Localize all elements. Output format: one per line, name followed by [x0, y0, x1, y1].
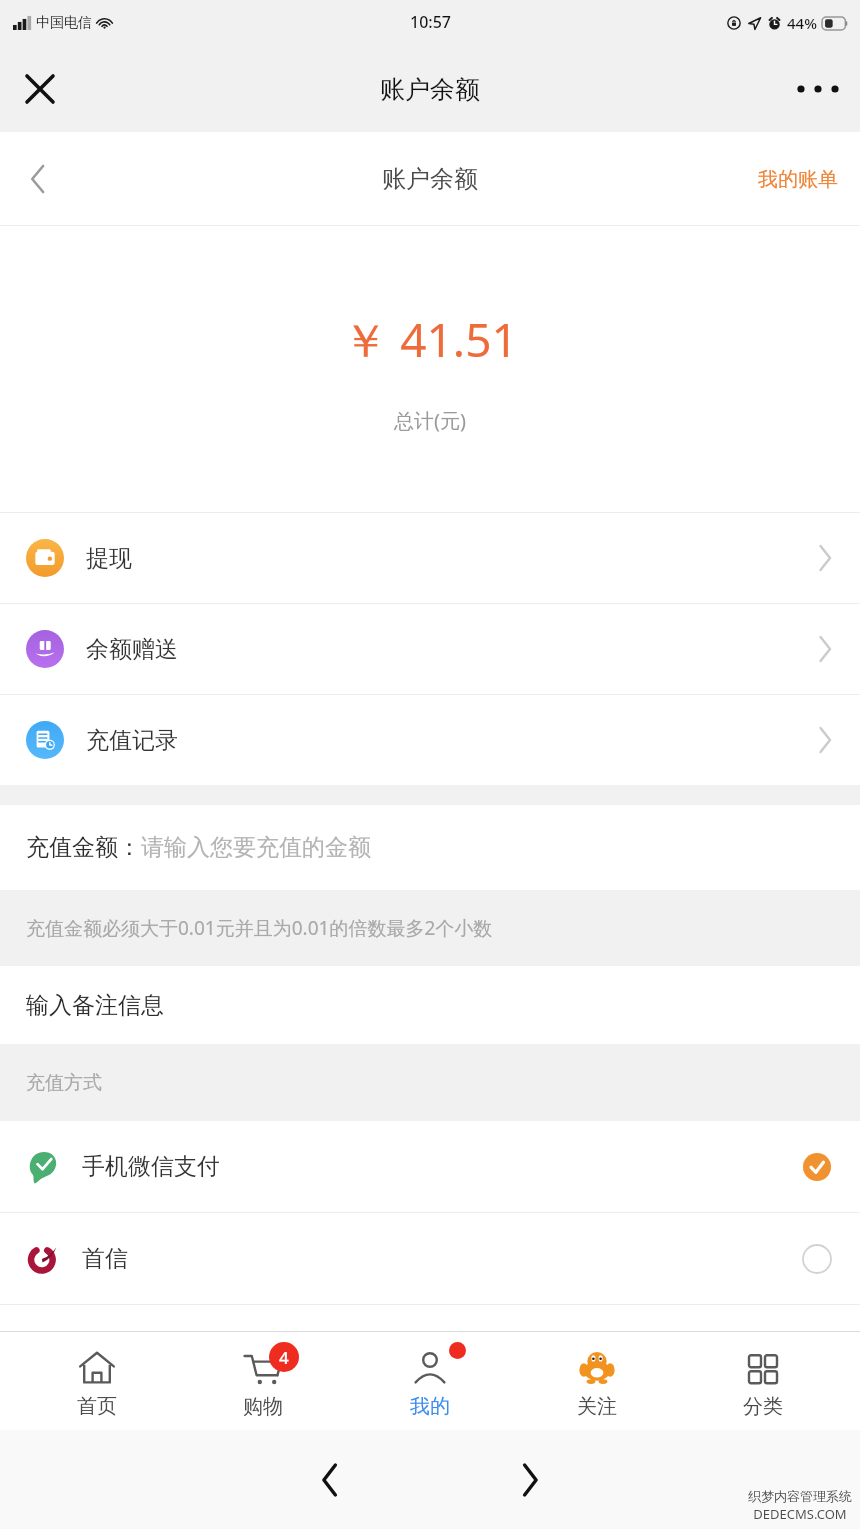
staticText: 账户余额 — [380, 74, 480, 105]
button[interactable]: 我的 — [360, 1344, 500, 1419]
button[interactable]: 我的账单 — [754, 159, 842, 200]
staticText: 总计(元) — [394, 407, 466, 434]
staticText: 织梦内容管理系统 DEDECMS.COM — [748, 1488, 852, 1523]
button[interactable]: 首信 — [0, 1213, 860, 1304]
staticText: 关注 — [577, 1394, 617, 1419]
button[interactable]: 分类 — [693, 1344, 833, 1419]
button[interactable]: Next — [495, 1445, 565, 1515]
button[interactable]: 首页 — [27, 1344, 167, 1419]
staticText: 购物 — [243, 1394, 283, 1419]
staticText: 分类 — [743, 1394, 783, 1419]
button[interactable]: 输入备注信息 — [0, 966, 860, 1044]
staticText: 余额赠送 — [86, 635, 178, 664]
button[interactable]: Previous — [295, 1445, 365, 1515]
button[interactable]: 提现 — [0, 513, 860, 603]
button[interactable]: 关注 — [527, 1344, 667, 1419]
button[interactable]: Back — [10, 151, 66, 207]
staticText: ￥ 41.51 — [342, 308, 518, 371]
staticText: 输入备注信息 — [26, 991, 164, 1020]
staticText: 充值方式 — [26, 1071, 102, 1095]
staticText: 充值记录 — [86, 726, 178, 755]
staticText: 首信 — [82, 1244, 128, 1273]
staticText: 10:57 — [410, 11, 451, 33]
staticText: 我的账单 — [758, 167, 838, 192]
button[interactable]: 4 — [193, 1344, 333, 1419]
button[interactable]: 余额赠送 — [0, 604, 860, 694]
staticText: 44% — [787, 13, 817, 33]
staticText: 手机微信支付 — [82, 1152, 220, 1181]
button[interactable]: 手机微信支付 — [0, 1121, 860, 1212]
staticText: 充值金额必须大于0.01元并且为0.01的倍数最多2个小数 — [26, 915, 493, 941]
staticText: 提现 — [86, 544, 132, 573]
staticText: 账户余额 — [382, 164, 478, 194]
button[interactable]: More options — [790, 67, 846, 111]
staticText: 充值金额： — [26, 833, 141, 862]
staticText: 中国电信 — [36, 14, 92, 32]
staticText: 首页 — [77, 1394, 117, 1419]
staticText: 请输入您要充值的金额 — [141, 833, 371, 862]
button[interactable]: 充值记录 — [0, 695, 860, 785]
staticText: 我的 — [410, 1394, 450, 1419]
staticText: 4 — [279, 1346, 289, 1369]
button[interactable]: Close — [14, 63, 66, 115]
button[interactable]: 充值金额： — [0, 805, 860, 890]
